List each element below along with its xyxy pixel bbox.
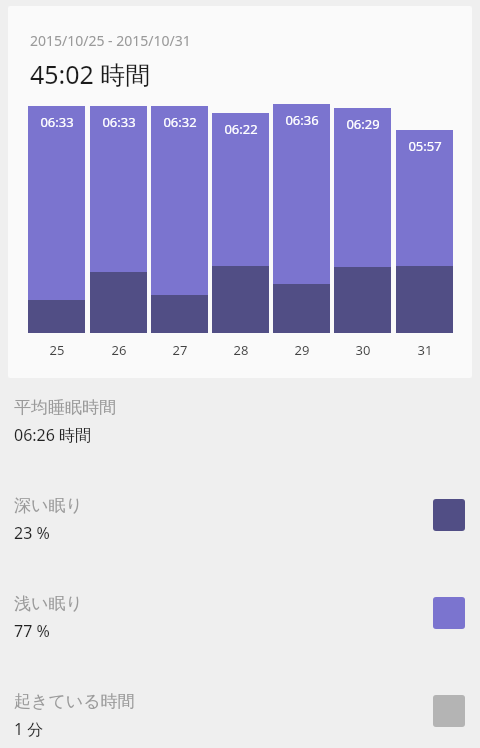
staticText: 深い眠り: [14, 495, 83, 516]
staticText: 06:36: [272, 111, 332, 129]
staticText: 27: [150, 341, 210, 359]
staticText: 06:32: [150, 113, 210, 131]
staticText: 06:33: [27, 113, 87, 131]
staticText: 06:22: [211, 120, 271, 138]
staticText: 25: [27, 341, 87, 359]
staticText: 05:57: [395, 137, 455, 155]
staticText: 29: [272, 341, 332, 359]
button[interactable]: 起きている時間: [0, 685, 480, 748]
staticText: 浅い眠り: [14, 593, 83, 614]
staticText: 2015/10/25 - 2015/10/31: [30, 31, 191, 50]
staticText: 45:02 時間: [30, 57, 151, 91]
staticText: 26: [89, 341, 149, 359]
staticText: 1 分: [14, 718, 44, 740]
staticText: 23 %: [14, 522, 50, 544]
staticText: 31: [395, 341, 455, 359]
staticText: 28: [211, 341, 271, 359]
staticText: 77 %: [14, 620, 50, 642]
button[interactable]: [8, 6, 472, 378]
staticText: 平均睡眠時間: [14, 397, 116, 418]
staticText: 06:29: [333, 115, 393, 133]
staticText: 30: [333, 341, 393, 359]
button[interactable]: 浅い眠り: [0, 587, 480, 683]
staticText: 06:33: [89, 113, 149, 131]
button[interactable]: 深い眠り: [0, 489, 480, 585]
staticText: 06:26 時間: [14, 424, 92, 446]
button[interactable]: 平均睡眠時間: [0, 391, 480, 487]
staticText: 起きている時間: [14, 691, 135, 712]
